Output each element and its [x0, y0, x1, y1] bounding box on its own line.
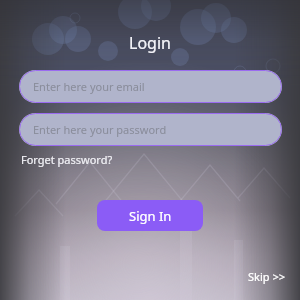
- staticText: Enter here your email: [33, 79, 145, 94]
- button[interactable]: Enter here your password: [19, 113, 282, 146]
- staticText: Skip >>: [248, 269, 285, 284]
- button[interactable]: Enter here your email: [19, 70, 282, 103]
- button[interactable]: Skip >>: [245, 267, 288, 286]
- staticText: Login: [129, 32, 171, 54]
- button[interactable]: Forget password?: [19, 150, 115, 169]
- staticText: Forget password?: [21, 152, 113, 167]
- button[interactable]: Sign In: [97, 200, 203, 231]
- staticText: Sign In: [129, 207, 172, 225]
- staticText: Enter here your password: [33, 122, 167, 137]
